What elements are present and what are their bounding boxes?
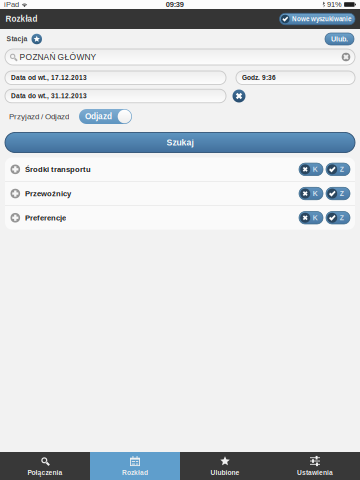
- button[interactable]: Środki transportu: [5, 157, 355, 181]
- button[interactable]: K: [299, 211, 323, 224]
- button[interactable]: Z: [326, 163, 350, 176]
- button[interactable]: Data od wt., 17.12.2013: [5, 71, 226, 84]
- staticText: Ulubione: [210, 469, 239, 476]
- staticText: Stacja: [6, 35, 27, 43]
- staticText: 09:39: [166, 0, 184, 9]
- button[interactable]: K: [299, 187, 323, 200]
- staticText: POZNAŃ GŁÓWNY: [20, 52, 97, 62]
- button[interactable]: Data do wt., 31.12.2013: [5, 89, 226, 103]
- staticText: Rozkład: [5, 14, 37, 24]
- button[interactable]: Ustawienia: [270, 452, 360, 480]
- staticText: K: [313, 214, 318, 222]
- button[interactable]: Wyczyść stację: [339, 50, 352, 63]
- button[interactable]: Nowe wyszukiwanie: [279, 13, 355, 25]
- button[interactable]: Preferencje: [5, 206, 355, 230]
- staticText: Preferencje: [25, 213, 66, 222]
- staticText: Ulub.: [331, 35, 348, 43]
- button[interactable]: K: [299, 163, 323, 176]
- staticText: Połączenia: [27, 469, 62, 476]
- staticText: Szukaj: [166, 138, 193, 147]
- button[interactable]: Z: [326, 211, 350, 224]
- button[interactable]: Szukaj: [5, 132, 355, 152]
- staticText: Przewoźnicy: [25, 189, 71, 198]
- staticText: Data do wt., 31.12.2013: [11, 92, 87, 100]
- staticText: Nowe wyszukiwanie: [292, 15, 351, 22]
- staticText: Z: [340, 165, 344, 173]
- button[interactable]: Godz. 9:36: [236, 71, 355, 84]
- staticText: K: [313, 190, 318, 197]
- staticText: Przyjazd / Odjazd: [9, 112, 69, 121]
- button[interactable]: Z: [326, 187, 350, 200]
- staticText: K: [313, 165, 318, 173]
- button[interactable]: Odjazd: [79, 109, 132, 124]
- staticText: Ustawienia: [297, 469, 333, 476]
- button[interactable]: Przewoźnicy: [5, 182, 355, 205]
- button[interactable]: Rozkład: [90, 452, 180, 480]
- staticText: Z: [340, 214, 344, 222]
- button[interactable]: Połączenia: [0, 452, 90, 480]
- staticText: Rozkład: [122, 469, 148, 476]
- button[interactable]: Wyczyść datę: [230, 89, 248, 103]
- staticText: Godz. 9:36: [242, 74, 276, 81]
- button[interactable]: Ulub.: [325, 33, 354, 45]
- button[interactable]: Ulubione: [180, 452, 270, 480]
- staticText: Odjazd: [85, 112, 112, 121]
- staticText: Data od wt., 17.12.2013: [11, 74, 87, 81]
- staticText: iPad: [4, 0, 19, 9]
- staticText: 91%: [327, 0, 342, 9]
- staticText: Z: [340, 190, 344, 197]
- staticText: Środki transportu: [25, 165, 91, 174]
